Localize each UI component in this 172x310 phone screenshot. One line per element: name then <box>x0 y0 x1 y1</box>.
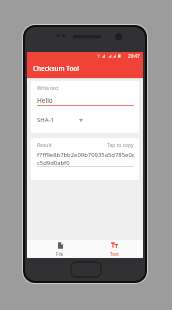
staticText: Result <box>37 142 52 149</box>
button[interactable]: Result <box>31 138 139 180</box>
staticText: Tap to copy <box>107 142 134 149</box>
staticText: File <box>56 251 64 257</box>
staticText: f7ff9e8b7bb2e09b70935a5d785e0c c5d9d0abf… <box>37 151 135 167</box>
button[interactable]: Text <box>94 240 134 258</box>
button[interactable]: Checksum Tool <box>27 60 143 78</box>
staticText: Hello <box>37 96 53 105</box>
staticText: Write text <box>37 85 59 91</box>
staticText: Checksum Tool <box>33 64 79 73</box>
staticText: 20:47 <box>128 53 140 59</box>
staticText: Text <box>110 251 119 257</box>
button[interactable]: File <box>40 240 80 258</box>
button[interactable]: SHA-1 <box>37 114 83 126</box>
staticText: SHA-1 <box>37 116 54 124</box>
